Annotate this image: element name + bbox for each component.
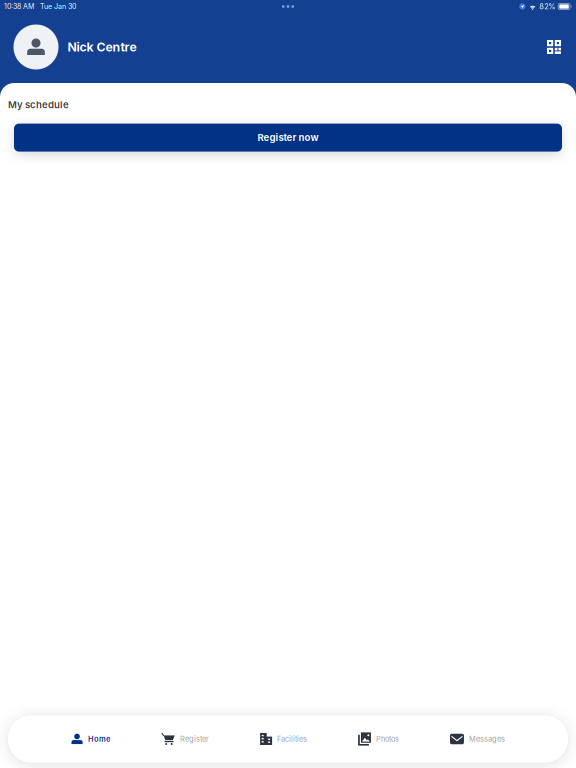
staticText: Messages bbox=[469, 734, 505, 743]
staticText: 10:38 AM bbox=[4, 2, 34, 11]
staticText: Tue Jan 30 bbox=[40, 2, 76, 11]
button[interactable]: Facilities bbox=[260, 715, 307, 762]
staticText: Register bbox=[180, 734, 209, 743]
staticText: 82% bbox=[539, 2, 555, 11]
button[interactable]: Scan QR code bbox=[538, 31, 570, 63]
staticText: Register now bbox=[257, 132, 318, 143]
staticText: Facilities bbox=[277, 734, 307, 743]
staticText: Nick Centre bbox=[67, 40, 136, 54]
staticText: Home bbox=[88, 734, 110, 743]
staticText: My schedule bbox=[8, 99, 69, 111]
button[interactable]: Photos bbox=[358, 715, 399, 762]
button[interactable]: Register now bbox=[14, 124, 562, 152]
button[interactable]: Register bbox=[161, 715, 209, 762]
button[interactable]: Messages bbox=[450, 715, 505, 762]
staticText: Photos bbox=[376, 734, 399, 743]
button[interactable]: Home bbox=[71, 715, 110, 762]
